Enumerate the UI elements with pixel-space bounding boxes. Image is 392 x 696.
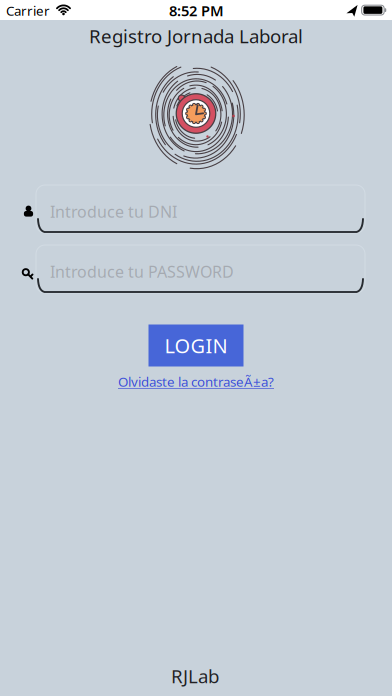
staticText: RJLab bbox=[171, 664, 219, 688]
staticText: Carrier bbox=[6, 2, 50, 19]
button[interactable]: Olvidaste la contraseÃ±a? bbox=[118, 373, 274, 390]
button[interactable]: Introduce tu DNI bbox=[24, 185, 365, 233]
staticText: Registro Jornada Laboral bbox=[89, 24, 303, 48]
staticText: 8:52 PM bbox=[169, 1, 224, 20]
staticText: Introduce tu DNI bbox=[50, 201, 177, 222]
staticText: Introduce tu PASSWORD bbox=[50, 261, 234, 282]
button[interactable]: LOGIN bbox=[148, 324, 243, 366]
button[interactable]: Introduce tu PASSWORD bbox=[24, 245, 365, 293]
staticText: Olvidaste la contraseÃ±a? bbox=[118, 373, 274, 390]
staticText: LOGIN bbox=[164, 332, 227, 359]
